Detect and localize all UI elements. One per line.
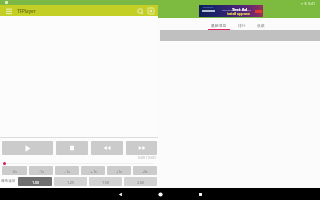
staticText: -5s — [12, 169, 17, 173]
button[interactable]: 1.50 — [89, 177, 122, 186]
button[interactable]: 2.00 — [124, 177, 157, 186]
button[interactable]: 1.25 — [54, 177, 87, 186]
staticText: 收藏 — [257, 23, 265, 28]
staticText: TFPlayer — [17, 8, 36, 14]
button[interactable]: Search — [134, 5, 145, 16]
staticText: Test Ad — [232, 7, 248, 13]
button[interactable]: -1s — [29, 166, 53, 175]
button[interactable]: -5s — [2, 166, 27, 175]
button[interactable]: Home — [140, 188, 180, 200]
staticText: -.1s — [64, 169, 70, 173]
staticText: install app now — [227, 12, 250, 16]
button[interactable]: +1s — [107, 166, 131, 175]
staticText: 2.00 — [137, 180, 144, 184]
button[interactable]: +5s — [133, 166, 157, 175]
staticText: 1.50 — [102, 180, 109, 184]
button[interactable]: -.1s — [55, 166, 79, 175]
button[interactable]: 排行 — [231, 23, 252, 30]
button[interactable]: +.1s — [81, 166, 105, 175]
staticText: +1s — [116, 169, 122, 173]
staticText: -1s — [39, 169, 44, 173]
staticText: 最新消息 — [211, 23, 227, 28]
button[interactable]: Recent apps — [180, 188, 220, 200]
button[interactable]: Rewind — [91, 141, 123, 155]
button[interactable]: Play — [2, 141, 53, 155]
button[interactable]: More options — [145, 5, 156, 16]
staticText: 1.00 — [32, 180, 39, 184]
staticText: 播放速度 — [1, 179, 16, 184]
staticText: 0:00 / 0:00 — [138, 155, 156, 160]
staticText: Sponsored — [222, 8, 235, 11]
button[interactable]: Advertisement — [199, 5, 263, 17]
button[interactable]: 最新消息 — [207, 23, 231, 30]
button[interactable]: Back — [100, 188, 140, 200]
button[interactable]: Open navigation drawer — [0, 5, 17, 16]
button[interactable]: 收藏 — [252, 23, 269, 30]
staticText: +5s — [142, 169, 148, 173]
staticText: +.1s — [90, 169, 97, 173]
staticText: 9:41 — [308, 1, 316, 6]
staticText: 排行 — [238, 23, 246, 28]
staticText: 1.25 — [67, 180, 74, 184]
button[interactable]: Stop — [56, 141, 88, 155]
staticText: now — [246, 8, 251, 11]
button[interactable]: 1.00 — [18, 177, 52, 186]
button[interactable]: Fast forward — [126, 141, 157, 155]
